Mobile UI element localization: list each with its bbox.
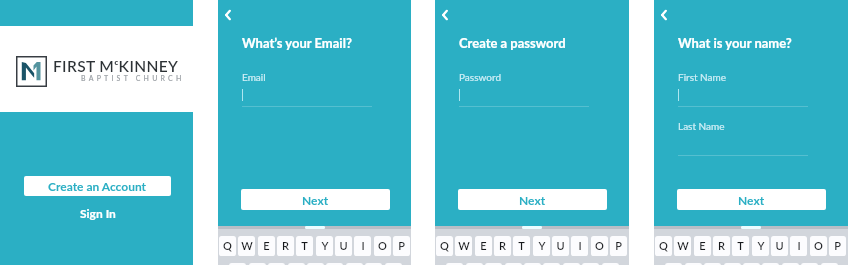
button[interactable]: O	[374, 236, 391, 256]
button[interactable]: T	[513, 236, 530, 256]
staticText: U	[775, 239, 784, 252]
staticText: P	[398, 239, 405, 252]
staticText: E	[699, 239, 706, 252]
button[interactable]: Q	[436, 236, 453, 256]
staticText: Q	[659, 239, 668, 252]
button[interactable]: Next	[677, 189, 826, 210]
staticText: T	[301, 239, 308, 252]
staticText: R	[282, 239, 289, 252]
button[interactable]: Back	[653, 4, 675, 26]
button[interactable]: W	[455, 236, 472, 256]
staticText: Create a password	[459, 35, 566, 51]
staticText: Y	[538, 239, 546, 252]
button[interactable]: I	[354, 236, 371, 256]
staticText: T	[737, 239, 744, 252]
staticText: Q	[440, 239, 449, 252]
staticText: R	[499, 239, 506, 252]
button[interactable]: Y	[533, 236, 550, 256]
staticText: O	[595, 239, 604, 252]
staticText: What’s your Email?	[242, 35, 352, 51]
button[interactable]: U	[771, 236, 788, 256]
button[interactable]: O	[810, 236, 827, 256]
button[interactable]: W	[238, 236, 255, 256]
button[interactable]: Next	[241, 189, 390, 210]
staticText: Next	[519, 193, 546, 207]
staticText: Sign In	[80, 206, 116, 220]
button[interactable]: Next	[458, 189, 607, 210]
button[interactable]: R	[713, 236, 730, 256]
staticText: Last Name	[678, 120, 725, 132]
button[interactable]: Y	[752, 236, 769, 256]
button[interactable]: U	[335, 236, 352, 256]
staticText: I	[361, 239, 365, 252]
staticText: I	[797, 239, 801, 252]
staticText: E	[480, 239, 487, 252]
button[interactable]: I	[790, 236, 807, 256]
button[interactable]: O	[591, 236, 608, 256]
button[interactable]: W	[674, 236, 691, 256]
button[interactable]: P	[829, 236, 846, 256]
button[interactable]: T	[732, 236, 749, 256]
staticText: P	[615, 239, 622, 252]
staticText: Y	[757, 239, 765, 252]
staticText: U	[556, 239, 565, 252]
staticText: Password	[459, 71, 501, 83]
button[interactable]: R	[277, 236, 294, 256]
staticText: Y	[321, 239, 329, 252]
staticText: O	[378, 239, 387, 252]
button[interactable]: Sign In	[72, 204, 124, 222]
button[interactable]: P	[610, 236, 627, 256]
button[interactable]: T	[296, 236, 313, 256]
button[interactable]: E	[258, 236, 275, 256]
staticText: O	[814, 239, 823, 252]
staticText: U	[339, 239, 348, 252]
button[interactable]: P	[393, 236, 410, 256]
staticText: Q	[223, 239, 232, 252]
staticText: BAPTIST CHURCH	[81, 74, 185, 82]
button[interactable]: E	[475, 236, 492, 256]
staticText: W	[458, 239, 470, 252]
button[interactable]: E	[694, 236, 711, 256]
staticText: T	[518, 239, 525, 252]
staticText: W	[241, 239, 253, 252]
staticText: Email	[242, 71, 266, 83]
button[interactable]: Back	[434, 4, 456, 26]
button[interactable]: Q	[655, 236, 672, 256]
staticText: FIRST MᶜKINNEY	[53, 57, 179, 76]
button[interactable]: Create an Account	[24, 176, 171, 196]
staticText: E	[263, 239, 270, 252]
staticText: First Name	[678, 71, 727, 83]
staticText: Create an Account	[48, 179, 147, 193]
button[interactable]: I	[571, 236, 588, 256]
button[interactable]: U	[552, 236, 569, 256]
staticText: Next	[738, 193, 765, 207]
staticText: R	[718, 239, 725, 252]
button[interactable]: Y	[316, 236, 333, 256]
staticText: I	[578, 239, 582, 252]
staticText: W	[677, 239, 689, 252]
staticText: P	[834, 239, 841, 252]
staticText: Next	[302, 193, 329, 207]
staticText: What is your name?	[678, 35, 792, 51]
button[interactable]: Q	[219, 236, 236, 256]
button[interactable]: R	[494, 236, 511, 256]
button[interactable]: Back	[217, 4, 239, 26]
